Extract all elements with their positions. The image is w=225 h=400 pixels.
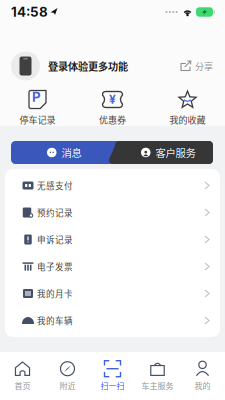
staticText: 我的收藏 — [169, 113, 205, 126]
staticText: 登录体验更多功能 — [48, 59, 128, 73]
staticText: 消息 — [61, 145, 81, 160]
staticText: 优惠券 — [99, 113, 126, 126]
staticText: ¥ — [109, 92, 116, 107]
staticText: 首页 — [14, 380, 30, 391]
button[interactable]: P — [0, 90, 75, 126]
button[interactable]: 我的车辆 — [5, 307, 220, 334]
staticText: 分享 — [195, 59, 213, 72]
button[interactable]: 申诉记录 — [5, 226, 220, 253]
button[interactable]: 车主服务 — [135, 361, 180, 391]
button[interactable]: 分享 — [180, 59, 213, 72]
button[interactable]: 客户服务 — [11, 141, 115, 164]
staticText: 客户服务 — [155, 145, 195, 160]
staticText: 电子发票 — [37, 260, 73, 273]
staticText: 14:58 — [11, 4, 48, 20]
staticText: 停车记录 — [19, 113, 55, 126]
button[interactable]: 我的 — [180, 361, 225, 391]
button[interactable]: 我的月卡 — [5, 280, 220, 307]
button[interactable]: 电子发票 — [5, 253, 220, 280]
button[interactable]: 登录体验更多功能 — [11, 51, 128, 80]
staticText: 车主服务 — [141, 380, 173, 391]
staticText: 预约记录 — [37, 206, 73, 219]
button[interactable]: 预约记录 — [5, 199, 220, 226]
button[interactable]: 我的收藏 — [150, 90, 225, 126]
button[interactable]: 消息 — [11, 141, 213, 164]
staticText: P — [32, 89, 41, 105]
staticText: 申诉记录 — [37, 233, 73, 246]
staticText: 我的月卡 — [37, 287, 73, 300]
staticText: 我的车辆 — [37, 314, 73, 327]
staticText: 扫一扫 — [100, 380, 124, 391]
button[interactable]: 附近 — [45, 361, 90, 391]
staticText: 附近 — [59, 380, 75, 391]
button[interactable]: 首页 — [0, 361, 45, 391]
staticText: 我的 — [194, 380, 210, 391]
button[interactable]: ¥ — [75, 90, 150, 126]
button[interactable]: 无感支付 — [5, 172, 220, 199]
button[interactable]: 扫一扫 — [90, 361, 135, 391]
staticText: 无感支付 — [37, 179, 73, 192]
